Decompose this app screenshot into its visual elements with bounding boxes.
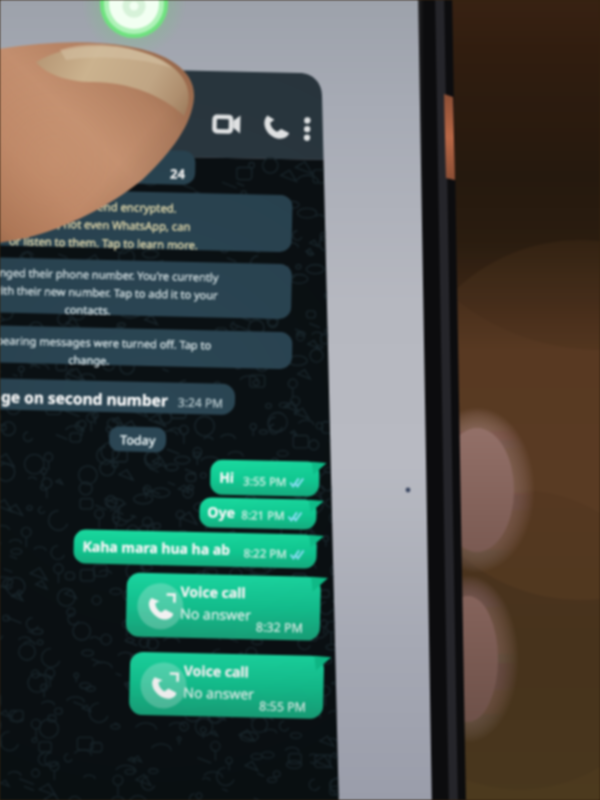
button[interactable]: More options bbox=[288, 104, 322, 148]
button[interactable]: Today bbox=[108, 425, 170, 455]
button[interactable]: Oye, 8:21 PM bbox=[200, 494, 322, 530]
button[interactable]: Voice call bbox=[252, 104, 294, 146]
button[interactable]: Hi, 3:55 PM bbox=[210, 456, 324, 496]
button[interactable]: Kaha mara hua ha ab, 8:22 PM bbox=[75, 529, 323, 569]
button[interactable]: Disappearing messages were turned off bbox=[0, 326, 294, 370]
button[interactable]: Message on second number, 3:24 PM bbox=[0, 380, 238, 416]
button[interactable]: Video call bbox=[203, 104, 245, 146]
button[interactable]: Voice call, no answer, 8:32 PM bbox=[129, 570, 329, 640]
button[interactable]: End-to-end encryption notice bbox=[0, 190, 292, 252]
button[interactable]: Voice call, no answer, 8:55 PM bbox=[134, 649, 334, 719]
button[interactable]: Contact changed their phone number bbox=[0, 258, 292, 320]
